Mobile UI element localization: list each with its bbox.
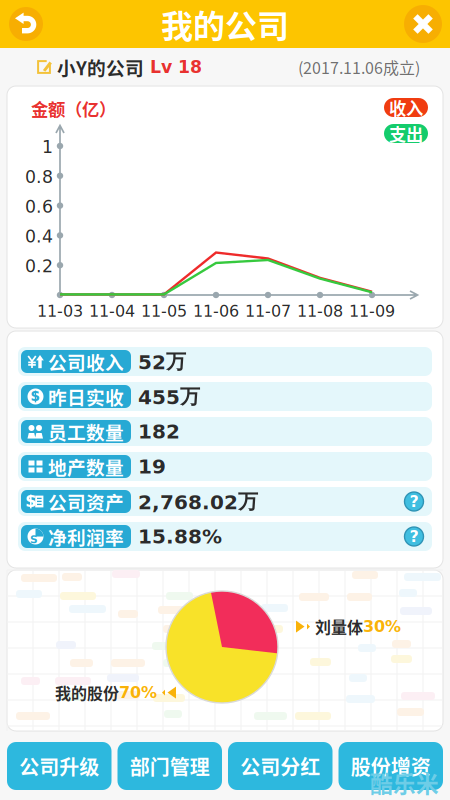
staticText: 11-08: [297, 302, 343, 321]
button[interactable]: Back: [4, 2, 48, 46]
button[interactable]: Close: [401, 2, 445, 46]
staticText: 1: [42, 137, 53, 157]
staticText: 52万: [138, 349, 186, 374]
button[interactable]: 公司升级: [7, 742, 111, 790]
staticText: Lv 18: [150, 57, 202, 77]
staticText: 2,768.02万: [138, 489, 258, 514]
staticText: 公司升级: [19, 751, 99, 780]
staticText: (2017.11.06成立): [298, 55, 420, 79]
staticText: 0.2: [25, 256, 53, 276]
button[interactable]: 小Y的公司: [36, 49, 202, 84]
staticText: 11-05: [141, 302, 187, 321]
staticText: 我的股份: [55, 681, 119, 704]
staticText: 公司资产: [48, 488, 124, 515]
button[interactable]: Help: [401, 523, 427, 549]
staticText: 455万: [138, 384, 200, 409]
staticText: 收入: [389, 95, 423, 120]
staticText: 支出: [389, 121, 423, 146]
staticText: 金额（亿）: [31, 96, 116, 121]
staticText: 11-03: [37, 302, 83, 321]
staticText: 11-06: [193, 302, 239, 321]
staticText: 公司收入: [48, 348, 124, 375]
button[interactable]: 收入: [384, 98, 428, 117]
staticText: 小Y的公司: [57, 53, 144, 80]
staticText: ?: [409, 492, 418, 511]
staticText: 0.6: [25, 197, 53, 217]
button[interactable]: Help: [401, 488, 427, 514]
button[interactable]: 股份增资: [338, 742, 443, 790]
staticText: 部门管理: [130, 751, 210, 780]
staticText: 公司分红: [240, 751, 320, 780]
button[interactable]: 支出: [384, 124, 428, 143]
staticText: 0.4: [25, 226, 53, 247]
staticText: 11-07: [245, 302, 291, 321]
staticText: S: [25, 492, 37, 511]
staticText: 地产数量: [48, 453, 124, 480]
button[interactable]: 公司分红: [228, 742, 332, 790]
staticText: 我的公司: [161, 1, 289, 47]
staticText: 182: [138, 420, 180, 443]
staticText: S: [30, 533, 38, 546]
staticText: ?: [409, 527, 418, 546]
staticText: 11-09: [349, 302, 395, 321]
staticText: 刘量体: [315, 615, 363, 638]
staticText: 0.8: [25, 167, 53, 187]
staticText: 员工数量: [48, 418, 124, 445]
staticText: 昨日实收: [48, 383, 124, 410]
staticText: S: [30, 389, 40, 404]
staticText: 15.88%: [138, 525, 222, 548]
staticText: 股份增资: [351, 751, 431, 780]
staticText: 净利润率: [48, 523, 124, 550]
staticText: 30%: [363, 617, 401, 636]
staticText: 11-04: [89, 302, 135, 321]
button[interactable]: 部门管理: [117, 742, 222, 790]
staticText: 酷乐米: [370, 766, 439, 799]
staticText: 19: [138, 455, 166, 478]
staticText: 70%: [119, 683, 157, 702]
